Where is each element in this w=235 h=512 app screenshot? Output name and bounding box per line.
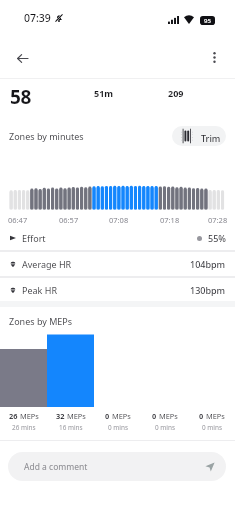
staticText: 07:28 xyxy=(208,215,228,225)
staticText: 0 mins xyxy=(155,423,175,432)
staticText: 07:18 xyxy=(160,215,180,225)
staticText: MEPs xyxy=(159,411,178,421)
button[interactable]: Trim xyxy=(172,126,226,146)
staticText: 32 xyxy=(56,411,65,421)
other: Send xyxy=(205,462,215,472)
staticText: 58 xyxy=(10,84,32,110)
staticText: Average HR xyxy=(22,258,72,270)
staticText: Peak HR xyxy=(22,284,57,296)
staticText: 0 xyxy=(152,411,157,421)
staticText: 55% xyxy=(208,232,226,244)
staticText: 06:47 xyxy=(8,215,28,225)
staticText: 130bpm xyxy=(190,284,226,296)
staticText: Add a comment xyxy=(24,461,88,473)
staticText: 209 xyxy=(168,87,184,99)
staticText: 0 xyxy=(199,411,204,421)
staticText: 95 xyxy=(204,17,211,25)
staticText: 26 xyxy=(9,411,18,421)
staticText: MEPs xyxy=(206,411,225,421)
button[interactable]: Back xyxy=(7,43,37,73)
staticText: Effort xyxy=(22,232,46,244)
staticText: 07:39 xyxy=(24,11,51,25)
button[interactable]: Effort xyxy=(0,225,235,251)
staticText: Trim xyxy=(201,132,221,144)
button[interactable]: Peak HR xyxy=(0,277,235,303)
staticText: 16 mins xyxy=(59,423,83,432)
button[interactable]: More options xyxy=(199,42,229,72)
staticText: Zones by minutes xyxy=(9,130,84,142)
staticText: 104bpm xyxy=(190,258,226,270)
staticText: MEPs xyxy=(112,411,131,421)
staticText: 0 mins xyxy=(202,423,222,432)
button[interactable]: Average HR xyxy=(0,251,235,277)
staticText: MEPs xyxy=(20,411,39,421)
staticText: Zones by MEPs xyxy=(9,315,73,327)
staticText: MEPs xyxy=(67,411,86,421)
staticText: 0 mins xyxy=(108,423,128,432)
staticText: 07:08 xyxy=(109,215,129,225)
staticText: 06:57 xyxy=(59,215,79,225)
button[interactable]: Add a comment xyxy=(8,452,226,481)
staticText: 26 mins xyxy=(12,423,36,432)
staticText: 51m xyxy=(94,87,114,99)
staticText: 0 xyxy=(105,411,110,421)
